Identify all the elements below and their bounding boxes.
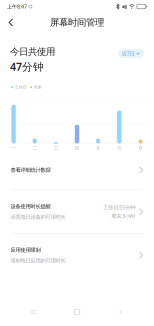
- staticText: 设备使用时长提醒: [10, 203, 50, 210]
- button[interactable]: Recent apps: [22, 305, 44, 319]
- staticText: 查看详细统计数据: [10, 167, 50, 173]
- staticText: 周末:3小时: [111, 212, 135, 219]
- staticText: 限制每日应用的可用时长: [10, 257, 65, 264]
- staticText: 上午8:47: [7, 3, 27, 10]
- staticText: 二: [33, 145, 37, 150]
- staticText: 应用使用限制: [10, 247, 40, 253]
- staticText: 五: [96, 145, 100, 150]
- staticText: 设置每日设备的可用时长: [10, 214, 65, 220]
- staticText: 三: [54, 145, 58, 150]
- staticText: 六: [117, 145, 121, 150]
- button[interactable]: Home: [66, 305, 88, 319]
- staticText: 一: [12, 145, 16, 150]
- staticText: 周末: [34, 85, 42, 89]
- staticText: 近7日: [122, 50, 135, 57]
- staticText: 47分钟: [10, 59, 44, 74]
- button[interactable]: 近7日: [118, 49, 144, 58]
- button[interactable]: 应用使用限制: [0, 234, 154, 277]
- button[interactable]: Back: [0, 14, 22, 30]
- button[interactable]: Back: [110, 305, 132, 319]
- staticText: 四: [75, 145, 79, 150]
- button[interactable]: 设备使用时长提醒: [0, 190, 154, 233]
- staticText: 屏幕时间管理: [50, 17, 104, 28]
- staticText: 今日共使用: [10, 46, 55, 57]
- staticText: 工作日: [15, 85, 27, 89]
- staticText: 日: [138, 145, 142, 150]
- button[interactable]: 查看详细统计数据: [0, 150, 154, 189]
- staticText: 工作日:55分钟: [103, 204, 135, 211]
